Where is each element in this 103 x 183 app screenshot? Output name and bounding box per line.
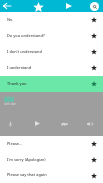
button[interactable]: Record xyxy=(4,117,17,130)
staticText: I'm sorry (Apologize) xyxy=(7,157,46,162)
button[interactable]: Favourites xyxy=(32,1,44,13)
button[interactable]: Play all xyxy=(63,0,75,12)
button[interactable]: Do you understand? xyxy=(0,28,103,44)
staticText: Please say that again xyxy=(7,172,47,177)
button[interactable]: I'm sorry (Apologize) xyxy=(0,152,103,168)
button[interactable]: I understand xyxy=(0,60,103,76)
button[interactable]: Slow playback xyxy=(58,117,71,130)
button[interactable]: I don't understand xyxy=(0,44,103,60)
button[interactable]: Play pronunciation xyxy=(31,117,44,130)
staticText: No xyxy=(7,17,13,22)
staticText: Please... xyxy=(7,141,23,146)
button[interactable]: No xyxy=(0,12,103,28)
button[interactable]: Search xyxy=(88,0,100,12)
button[interactable]: Volume xyxy=(83,117,96,130)
staticText: Thank you xyxy=(7,81,27,86)
staticText: xiè xie xyxy=(4,101,16,106)
button[interactable]: Thank you xyxy=(0,76,103,92)
button[interactable]: Please say that again xyxy=(0,168,103,183)
button[interactable]: Back xyxy=(1,0,13,12)
staticText: I understand xyxy=(7,65,32,70)
staticText: Do you understand? xyxy=(7,33,45,38)
staticText: I don't understand xyxy=(7,49,42,54)
staticText: 谢谢 xyxy=(4,95,15,102)
button[interactable]: Please... xyxy=(0,136,103,152)
